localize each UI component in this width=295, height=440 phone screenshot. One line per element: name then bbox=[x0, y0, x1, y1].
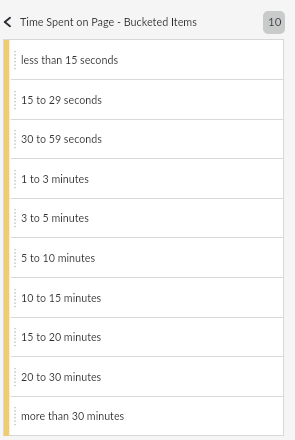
staticText: more than 30 minutes bbox=[21, 409, 125, 422]
staticText: 1 to 3 minutes bbox=[21, 172, 89, 185]
button[interactable]: 10 bbox=[263, 11, 285, 34]
staticText: less than 15 seconds bbox=[21, 53, 119, 66]
staticText: 15 to 29 seconds bbox=[21, 93, 102, 106]
button[interactable]: more than 30 minutes bbox=[4, 396, 283, 436]
button[interactable]: 15 to 29 seconds bbox=[4, 80, 283, 120]
button[interactable]: 20 to 30 minutes bbox=[4, 357, 283, 397]
button[interactable]: 5 to 10 minutes bbox=[4, 238, 283, 278]
staticText: 10 bbox=[268, 15, 282, 29]
button[interactable]: 15 to 20 minutes bbox=[4, 317, 283, 357]
staticText: 15 to 20 minutes bbox=[21, 330, 102, 343]
staticText: 5 to 10 minutes bbox=[21, 251, 96, 264]
button[interactable]: Back bbox=[0, 8, 14, 36]
button[interactable]: less than 15 seconds bbox=[4, 40, 283, 80]
staticText: 30 to 59 seconds bbox=[21, 132, 102, 145]
button[interactable]: 1 to 3 minutes bbox=[4, 159, 283, 199]
button[interactable]: 3 to 5 minutes bbox=[4, 198, 283, 238]
staticText: 3 to 5 minutes bbox=[21, 211, 89, 224]
button[interactable]: 10 to 15 minutes bbox=[4, 278, 283, 318]
staticText: 10 to 15 minutes bbox=[21, 291, 102, 304]
button[interactable]: 30 to 59 seconds bbox=[4, 119, 283, 159]
staticText: 20 to 30 minutes bbox=[21, 370, 102, 383]
staticText: Time Spent on Page - Bucketed Items bbox=[20, 15, 197, 28]
